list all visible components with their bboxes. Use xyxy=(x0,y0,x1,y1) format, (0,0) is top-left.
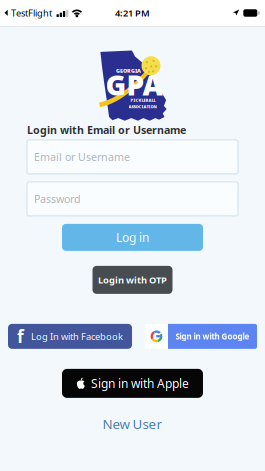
button[interactable]: New User xyxy=(72,412,192,436)
button[interactable]: Log in xyxy=(62,224,203,251)
staticText: Password xyxy=(34,192,81,206)
staticText: ASSOCIATION xyxy=(128,104,156,109)
staticText: Log In with Facebook xyxy=(31,330,123,343)
button[interactable]: Sign in with Apple xyxy=(62,369,203,398)
staticText: Sign in with Apple xyxy=(91,375,189,391)
staticText: Login with Email or Username xyxy=(27,123,186,137)
staticText: Login with OTP xyxy=(98,274,167,286)
staticText: New User xyxy=(102,415,162,433)
staticText: Email or Username xyxy=(34,150,130,164)
button[interactable]: Login with OTP xyxy=(92,266,172,294)
staticText: f xyxy=(17,325,24,348)
staticText: GPA xyxy=(105,66,162,103)
button[interactable]: Sign in with Google xyxy=(145,324,257,349)
staticText: GEORGIA xyxy=(116,67,141,74)
staticText: TestFlight xyxy=(11,7,52,19)
button[interactable]: f xyxy=(8,324,132,349)
staticText: PICKLEBALL xyxy=(130,97,155,103)
staticText: Log in xyxy=(116,229,149,245)
staticText: 4:21 PM xyxy=(115,7,150,19)
staticText: Sign in with Google xyxy=(175,331,249,342)
